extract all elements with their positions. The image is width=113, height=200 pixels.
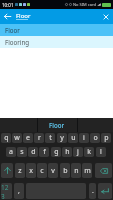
button[interactable]: u bbox=[68, 133, 78, 143]
button[interactable]: e bbox=[23, 133, 33, 143]
staticText: . bbox=[92, 186, 94, 196]
staticText: , bbox=[18, 186, 20, 196]
button[interactable]: , bbox=[14, 183, 24, 199]
staticText: Floor bbox=[16, 12, 31, 20]
staticText: Floor bbox=[49, 121, 65, 129]
button[interactable]: Floor bbox=[0, 24, 113, 36]
staticText: c bbox=[40, 166, 44, 176]
staticText: o bbox=[93, 133, 98, 143]
button[interactable]: d bbox=[28, 147, 38, 157]
button[interactable]: t bbox=[45, 133, 55, 143]
button[interactable]: j bbox=[73, 147, 83, 157]
button[interactable]: l bbox=[96, 147, 106, 157]
button[interactable]: c bbox=[37, 163, 47, 178]
button[interactable]: s bbox=[17, 147, 27, 157]
staticText: a bbox=[9, 147, 13, 157]
button[interactable]: Backspace bbox=[95, 163, 112, 178]
button[interactable]: Numbers bbox=[1, 183, 12, 199]
staticText: p bbox=[104, 133, 109, 143]
button[interactable]: q bbox=[1, 133, 11, 143]
staticText: u bbox=[71, 133, 76, 143]
staticText: Flooring bbox=[5, 38, 30, 46]
button[interactable]: b bbox=[60, 163, 70, 178]
button[interactable]: p bbox=[101, 133, 111, 143]
staticText: d bbox=[31, 147, 36, 157]
staticText: b bbox=[63, 166, 68, 176]
staticText: j bbox=[77, 147, 79, 157]
button[interactable]: . bbox=[89, 183, 96, 199]
staticText: l bbox=[100, 147, 102, 157]
staticText: z bbox=[18, 166, 22, 176]
button[interactable]: f bbox=[39, 147, 49, 157]
button[interactable]: Back bbox=[0, 9, 14, 24]
button[interactable]: Flooring bbox=[0, 36, 113, 48]
staticText: t bbox=[49, 133, 52, 143]
button[interactable]: g bbox=[51, 147, 61, 157]
button[interactable]: o bbox=[90, 133, 100, 143]
staticText: m bbox=[84, 166, 91, 176]
staticText: n bbox=[74, 166, 79, 176]
staticText: i bbox=[83, 133, 85, 143]
staticText: w bbox=[14, 133, 20, 143]
button[interactable]: n bbox=[71, 163, 81, 178]
button[interactable]: a bbox=[6, 147, 16, 157]
button[interactable]: r bbox=[34, 133, 44, 143]
button[interactable]: h bbox=[62, 147, 72, 157]
button[interactable]: w bbox=[12, 133, 22, 143]
staticText: e bbox=[26, 133, 30, 143]
button[interactable]: z bbox=[15, 163, 25, 178]
staticText: q bbox=[4, 133, 9, 143]
button[interactable]: y bbox=[57, 133, 67, 143]
staticText: s bbox=[20, 147, 24, 157]
staticText: g bbox=[54, 147, 59, 157]
button[interactable]: m bbox=[82, 163, 92, 178]
button[interactable]: k bbox=[84, 147, 94, 157]
button[interactable]: x bbox=[26, 163, 36, 178]
button[interactable]: Clear search bbox=[99, 9, 113, 24]
button[interactable]: Floor bbox=[37, 118, 77, 132]
staticText: Floor bbox=[5, 26, 20, 34]
button[interactable]: Enter bbox=[98, 183, 112, 199]
button[interactable]: Shift bbox=[1, 163, 13, 178]
staticText: v bbox=[51, 166, 55, 176]
staticText: f bbox=[43, 147, 46, 157]
staticText: k bbox=[87, 147, 91, 157]
staticText: x bbox=[29, 166, 33, 176]
staticText: r bbox=[38, 133, 41, 143]
button[interactable]: i bbox=[79, 133, 89, 143]
staticText: y bbox=[60, 133, 64, 143]
staticText: 123 bbox=[1, 183, 12, 199]
staticText: 10:01 bbox=[2, 2, 14, 8]
staticText: h bbox=[65, 147, 70, 157]
staticText: No SIM card bbox=[73, 2, 96, 7]
button[interactable]: v bbox=[48, 163, 58, 178]
